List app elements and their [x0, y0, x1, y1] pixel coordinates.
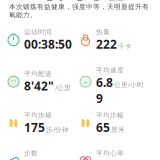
staticText: 千卡	[118, 42, 132, 51]
staticText: 平均心率	[96, 149, 124, 157]
staticText: 步数	[24, 149, 38, 157]
staticText: 6.89	[96, 74, 113, 106]
staticText: 平均步幅	[96, 111, 124, 119]
staticText: 平均配速	[24, 70, 52, 78]
staticText: 8'42"	[24, 78, 54, 94]
staticText: 222	[96, 36, 117, 52]
staticText: 4.46	[36, 0, 106, 10]
staticText: 运动时间	[24, 28, 52, 36]
staticText: 厘米	[111, 126, 125, 134]
staticText: 平均步频	[24, 111, 52, 119]
staticText: 00:38:50	[24, 36, 72, 52]
staticText: 公里/小时	[114, 80, 144, 89]
staticText: 65	[96, 119, 110, 135]
staticText: 热量	[96, 28, 110, 36]
staticText: 平均速度	[96, 66, 124, 74]
staticText: 公里	[108, 0, 124, 3]
staticText: /公里	[55, 83, 71, 92]
staticText: 本次锻炼有益健康，强度中等，天明显提升有氧能力。	[9, 3, 149, 19]
staticText: 175	[24, 119, 45, 135]
staticText: 步/分钟	[46, 125, 69, 134]
